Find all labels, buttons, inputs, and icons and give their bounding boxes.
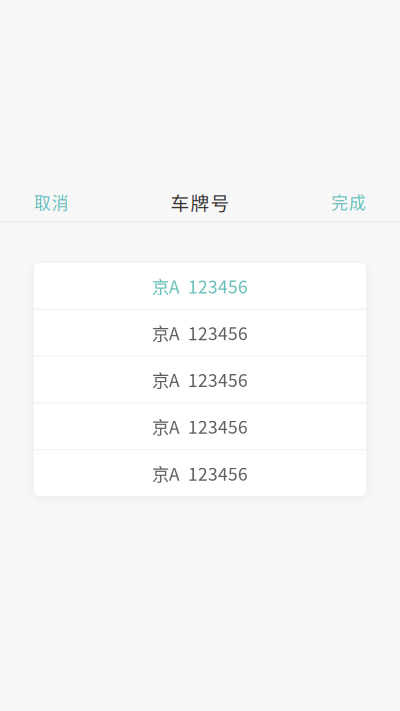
staticText: 取消	[34, 190, 69, 214]
staticText: 京A 123456	[152, 414, 248, 439]
button[interactable]: 京A 123456	[34, 263, 366, 309]
button[interactable]: 京A 123456	[34, 310, 366, 356]
button[interactable]: 京A 123456	[34, 450, 366, 496]
button[interactable]: 取消	[0, 183, 88, 221]
staticText: 车牌号	[170, 188, 229, 215]
button[interactable]: 京A 123456	[34, 403, 366, 449]
staticText: 完成	[331, 190, 366, 214]
staticText: 京A 123456	[152, 273, 248, 298]
button[interactable]: 京A 123456	[34, 357, 366, 402]
staticText: 京A 123456	[152, 367, 248, 392]
button[interactable]: 完成	[312, 183, 400, 221]
staticText: 京A 123456	[152, 320, 248, 345]
staticText: 京A 123456	[152, 461, 248, 486]
